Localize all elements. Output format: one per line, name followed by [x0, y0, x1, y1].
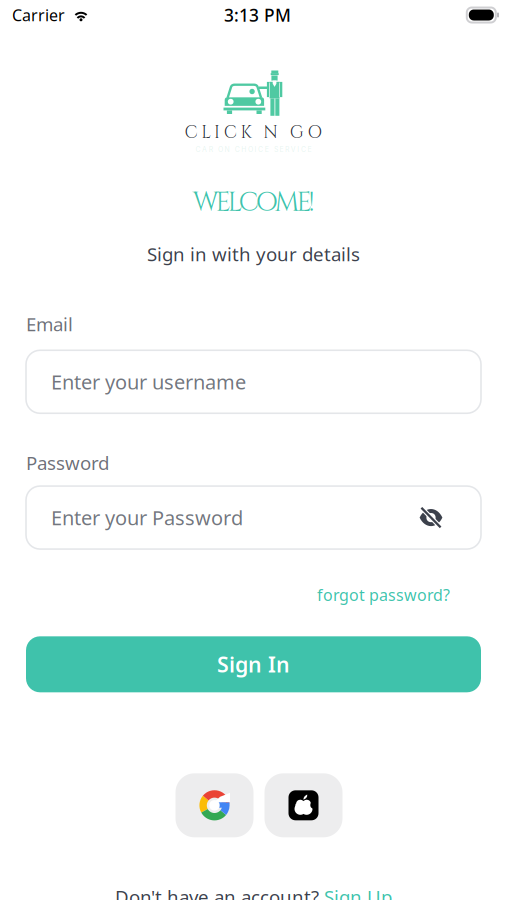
staticText: Carrier	[12, 4, 65, 26]
button[interactable]: Show password	[419, 508, 443, 528]
staticText: WELCOME!	[192, 185, 314, 221]
staticText: Enter your Password	[51, 504, 243, 531]
button[interactable]: Sign in with Google	[175, 773, 253, 837]
staticText: 3:13 PM	[224, 3, 291, 26]
staticText: Sign In	[217, 650, 290, 678]
staticText: forgot password?	[317, 584, 450, 605]
button[interactable]: Sign Up	[324, 884, 392, 900]
button[interactable]: Sign In	[26, 636, 481, 692]
staticText: Enter your username	[51, 368, 246, 395]
staticText: Sign Up	[324, 884, 392, 900]
staticText: Don't have an account?	[115, 884, 319, 900]
staticText: Email	[26, 311, 73, 336]
staticText: Password	[26, 450, 109, 475]
staticText: Sign in with your details	[147, 242, 360, 266]
button[interactable]: Sign in with Apple	[264, 773, 342, 837]
staticText: CLICK N GO	[184, 121, 323, 144]
staticText: CAR ON CHOICE SERVICE	[195, 145, 311, 154]
button[interactable]: forgot password?	[317, 584, 450, 605]
